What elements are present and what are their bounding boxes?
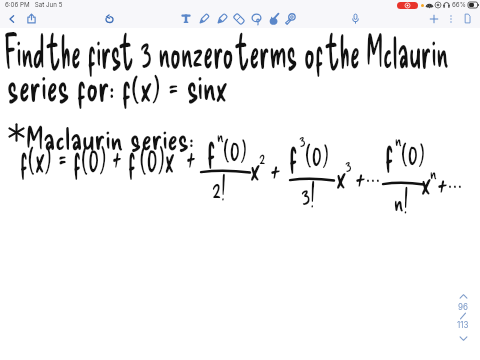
staticText: n! [394,184,408,216]
staticText: Find the first 3 nonzero terms of the Mc… [4,23,449,77]
staticText: n [395,127,403,150]
button[interactable]: Eraser [230,9,248,28]
staticText: f(x) = f(0) + f'(0)x + [20,130,196,180]
staticText: f [207,121,216,169]
staticText: f [289,126,298,174]
button[interactable]: Highlighter [213,9,231,28]
staticText: Maclaurin series: [26,118,195,156]
staticText: 113 [457,320,469,330]
staticText: + [355,156,366,197]
staticText: … [448,158,462,195]
staticText: + [437,162,448,203]
button[interactable]: Next page [457,332,469,344]
button[interactable]: Text tool [177,9,195,28]
button[interactable]: Shapes [281,9,299,28]
button[interactable]: Pages [458,9,476,28]
staticText: n [217,123,225,146]
button[interactable]: Microphone [346,9,364,28]
staticText: 3 [299,128,306,151]
staticText: series for: f(x) = sinx [7,61,228,109]
staticText: 66% [452,1,466,9]
button[interactable]: Share [22,9,40,28]
staticText: x [336,154,346,195]
staticText: (0) [305,133,329,173]
staticText: 2 [259,145,266,168]
button[interactable]: Undo [100,9,118,28]
staticText: (0) [401,132,425,172]
staticText: 96 [458,302,468,312]
button[interactable]: Hand [264,9,282,28]
staticText: x [421,160,431,201]
button[interactable]: Back [3,9,21,28]
staticText: x [250,146,260,187]
staticText: (0) [223,128,247,168]
button[interactable]: Add page [425,9,443,28]
staticText: + [270,148,281,189]
button[interactable]: More options [442,9,460,28]
staticText: 3 [345,153,352,176]
staticText: f [385,125,394,173]
staticText: 2! [212,171,226,203]
staticText: 6:06 PM Sat Jun 5 [5,1,63,9]
staticText: n [430,160,438,183]
button[interactable]: Previous page [457,290,469,302]
button[interactable]: Pen [195,9,213,28]
staticText: 3! [301,178,315,210]
staticText: … [366,152,380,189]
button[interactable]: Lasso [247,9,265,28]
